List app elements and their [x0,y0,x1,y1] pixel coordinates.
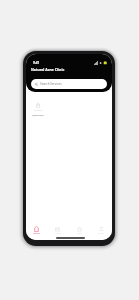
staticText: Quick Book [32,114,44,117]
staticText: More [98,231,104,234]
staticText: Booking [34,109,42,112]
button[interactable]: Search Services [31,79,107,89]
button[interactable]: Cart [68,226,90,235]
button[interactable]: More [90,226,112,235]
button[interactable]: Home [26,226,47,235]
staticText: Shop [55,231,61,234]
staticText: Natural Acne Clinic [31,67,65,72]
staticText: 9:41 [33,61,40,65]
staticText: Home [33,231,40,234]
button[interactable]: Shop [47,226,68,235]
button[interactable]: Booking [29,97,47,117]
staticText: Cart [77,231,82,234]
staticText: Search Services [40,82,62,86]
